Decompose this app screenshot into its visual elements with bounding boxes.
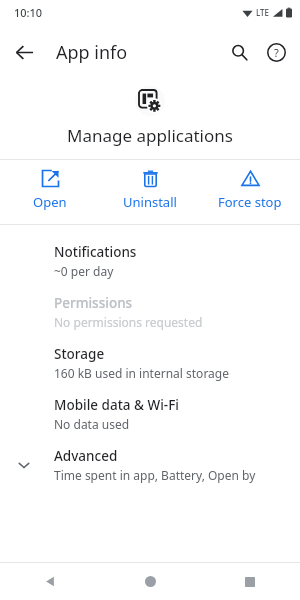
staticText: Manage applications xyxy=(67,124,233,147)
staticText: LTE xyxy=(256,7,270,18)
staticText: No permissions requested xyxy=(54,314,203,330)
button[interactable]: Back xyxy=(0,563,100,600)
button[interactable]: Notifications xyxy=(0,235,300,286)
staticText: Mobile data & Wi-Fi xyxy=(54,396,179,414)
staticText: ? xyxy=(274,45,279,60)
staticText: App info xyxy=(56,40,128,65)
staticText: No data used xyxy=(54,416,130,432)
staticText: ~0 per day xyxy=(54,263,114,279)
button[interactable]: Recent apps xyxy=(200,563,300,600)
button[interactable]: Uninstall xyxy=(100,160,200,211)
button[interactable]: Mobile data & Wi-Fi xyxy=(0,388,300,439)
staticText: Open xyxy=(33,193,67,211)
staticText: Uninstall xyxy=(123,193,177,211)
button[interactable]: Home xyxy=(100,563,200,600)
button[interactable]: Back xyxy=(6,34,42,70)
staticText: Notifications xyxy=(54,243,137,261)
button[interactable]: Permissions xyxy=(0,286,300,337)
staticText: Advanced xyxy=(54,447,118,465)
button[interactable]: Open xyxy=(0,160,100,211)
staticText: Permissions xyxy=(54,294,133,312)
button[interactable]: Advanced xyxy=(0,439,300,490)
button[interactable]: Storage xyxy=(0,337,300,388)
staticText: Time spent in app, Battery, Open by defa… xyxy=(54,467,284,483)
staticText: 10:10 xyxy=(14,5,43,20)
button[interactable]: Force stop xyxy=(200,160,300,211)
button[interactable]: Help xyxy=(258,34,294,70)
staticText: Force stop xyxy=(218,193,282,211)
button[interactable]: Search xyxy=(221,34,257,70)
staticText: 160 kB used in internal storage xyxy=(54,365,229,381)
staticText: Storage xyxy=(54,345,105,363)
